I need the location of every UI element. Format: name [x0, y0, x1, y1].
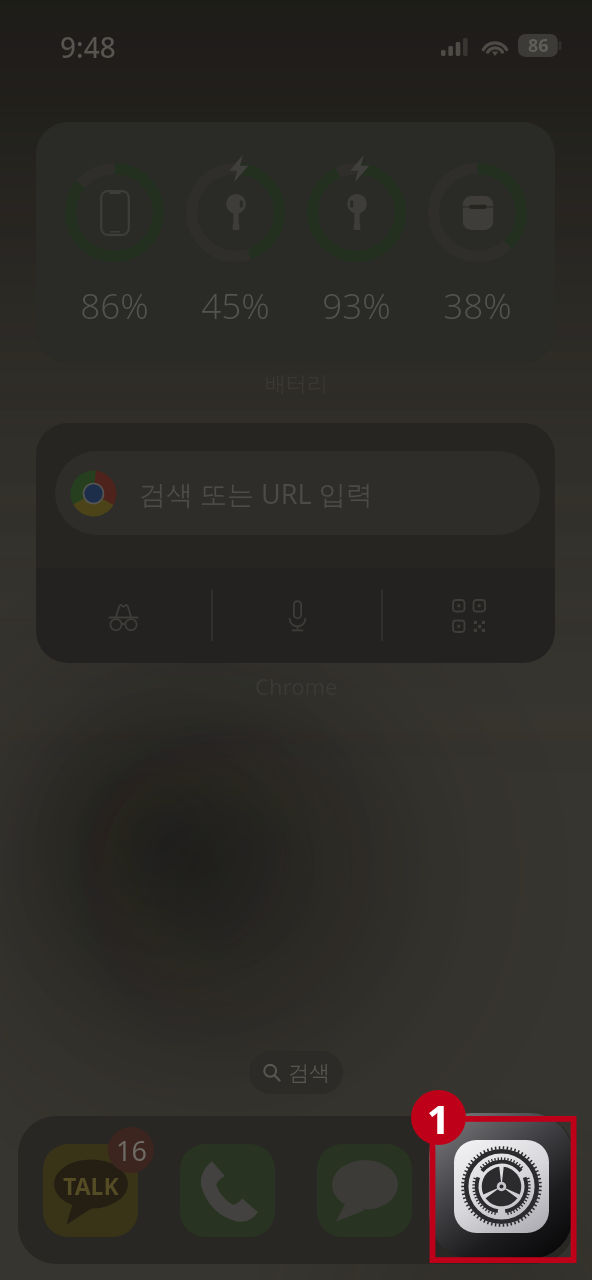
- button[interactable]: Scan QR code: [383, 568, 555, 663]
- button[interactable]: Incognito: [36, 568, 211, 663]
- staticText: 1: [427, 1091, 450, 1145]
- staticText: TALK: [63, 1170, 119, 1201]
- staticText: 16: [116, 1132, 147, 1169]
- staticText: 검색 또는 URL 입력: [139, 475, 373, 512]
- staticText: 9:48: [60, 28, 116, 66]
- button[interactable]: 검색 또는 URL 입력: [55, 451, 540, 535]
- button[interactable]: Settings: [429, 1113, 573, 1259]
- button[interactable]: 검색: [249, 1051, 343, 1094]
- staticText: 검색: [288, 1060, 330, 1086]
- staticText: 86: [528, 33, 549, 58]
- staticText: 45%: [201, 282, 270, 330]
- button[interactable]: KakaoTalk: [43, 1144, 138, 1237]
- button[interactable]: 86%: [36, 122, 555, 363]
- staticText: Chrome: [255, 671, 338, 701]
- staticText: 배터리: [265, 371, 328, 397]
- staticText: 86%: [80, 282, 149, 330]
- staticText: 93%: [322, 282, 391, 330]
- button[interactable]: Messages: [317, 1144, 412, 1237]
- staticText: 38%: [443, 282, 512, 330]
- button[interactable]: Phone: [180, 1144, 275, 1237]
